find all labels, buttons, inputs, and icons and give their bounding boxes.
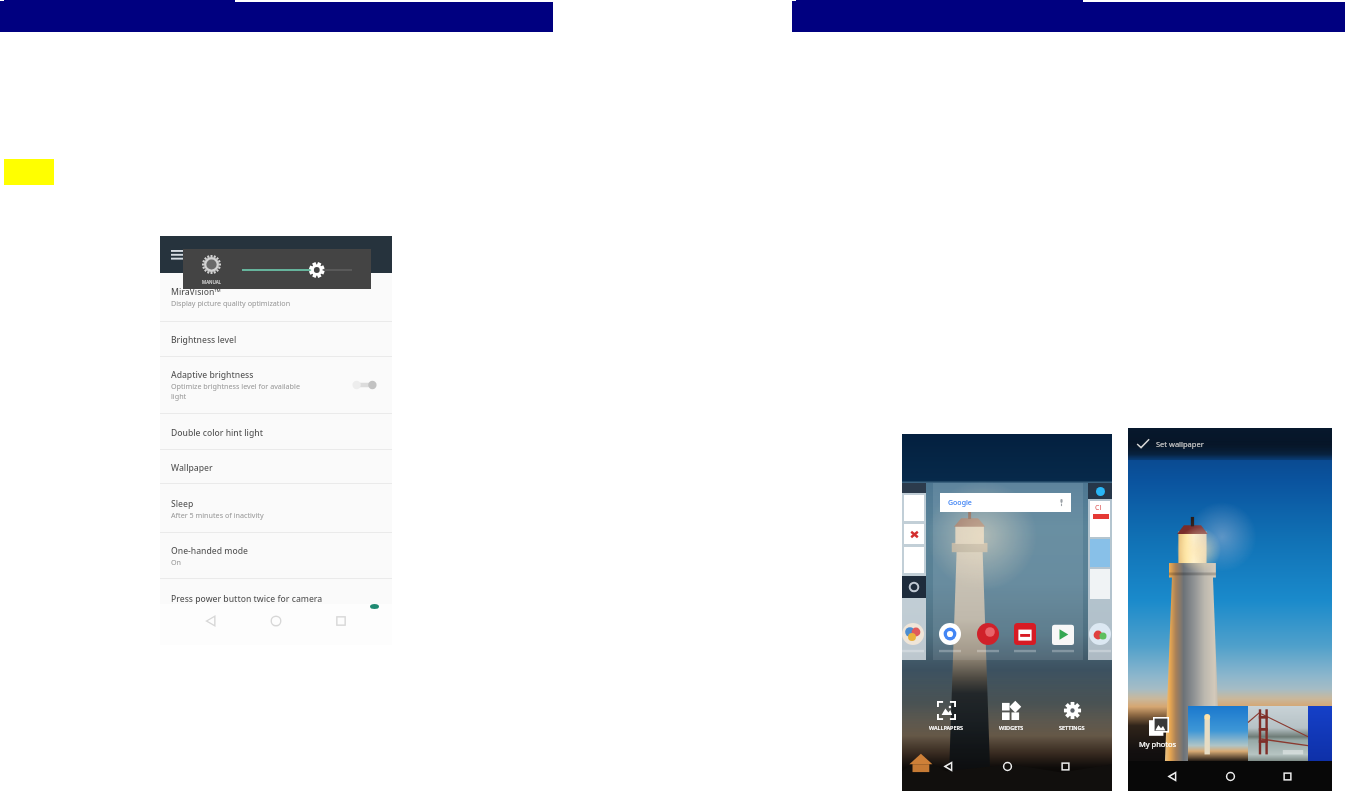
staticText: WIDGETS xyxy=(999,724,1024,731)
staticText: Set wallpaper xyxy=(1156,439,1204,449)
button[interactable]: Wallpaper xyxy=(171,462,213,474)
button[interactable]: WALLPAPERS xyxy=(921,698,972,734)
button[interactable] xyxy=(1248,706,1308,761)
button[interactable]: Press power button twice for camera xyxy=(171,593,323,605)
button[interactable]: Home xyxy=(1224,770,1237,783)
button[interactable]: Back xyxy=(942,760,955,773)
button[interactable]: My photos xyxy=(1138,715,1184,751)
staticText: SETTINGS xyxy=(1059,724,1085,731)
button[interactable]: Adaptive brightness xyxy=(171,369,254,381)
button[interactable]: Menu xyxy=(171,250,184,260)
staticText: MANUAL xyxy=(197,279,226,285)
button[interactable] xyxy=(351,378,378,392)
button[interactable]: Back xyxy=(1166,770,1179,783)
button[interactable]: Google xyxy=(933,483,1083,660)
button[interactable]: MiraVision™ xyxy=(171,286,221,298)
button[interactable] xyxy=(975,622,1001,652)
button[interactable]: One-handed mode xyxy=(171,545,248,557)
button[interactable] xyxy=(1050,622,1076,652)
button[interactable] xyxy=(937,622,963,652)
button[interactable]: Brightness level xyxy=(171,334,237,346)
staticText: After 5 minutes of inactivity xyxy=(171,510,264,520)
staticText: WALLPAPERS xyxy=(929,724,964,731)
button[interactable] xyxy=(900,622,926,652)
button[interactable]: Sleep xyxy=(171,498,194,510)
button[interactable]: Back xyxy=(203,613,219,629)
staticText: Optimize brightness level for available xyxy=(171,381,300,391)
button[interactable]: MANUAL xyxy=(183,249,371,289)
staticText: Google xyxy=(948,498,972,508)
staticText: Cl xyxy=(1095,503,1102,513)
button[interactable] xyxy=(1188,706,1248,761)
button[interactable]: Recents xyxy=(333,613,349,629)
button[interactable]: Set wallpaper xyxy=(1136,428,1332,460)
button[interactable] xyxy=(1308,706,1332,761)
staticText: light xyxy=(171,391,187,401)
button[interactable]: Cl xyxy=(1088,483,1112,660)
button[interactable]: Recents xyxy=(1281,770,1294,783)
staticText: My photos xyxy=(1139,739,1177,749)
button[interactable] xyxy=(359,598,383,610)
button[interactable]: Recents xyxy=(1059,760,1072,773)
button[interactable]: Home xyxy=(1001,760,1014,773)
button[interactable]: Google xyxy=(940,493,1071,512)
button[interactable]: Home xyxy=(268,613,284,629)
button[interactable] xyxy=(1012,622,1038,652)
button[interactable] xyxy=(902,483,926,660)
button[interactable] xyxy=(1087,622,1113,652)
staticText: On xyxy=(171,557,182,567)
button[interactable]: SETTINGS xyxy=(1051,698,1093,734)
button[interactable]: Double color hint light xyxy=(171,427,263,439)
staticText: Display picture quality optimization xyxy=(171,298,291,308)
button[interactable]: WIDGETS xyxy=(991,698,1032,734)
